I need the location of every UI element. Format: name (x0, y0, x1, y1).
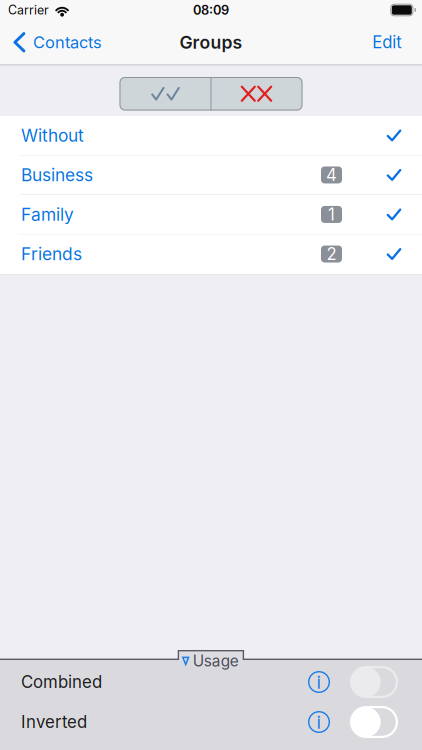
staticText: Contacts (33, 32, 102, 52)
button[interactable]: Contacts (0, 20, 110, 64)
staticText: 4 (326, 165, 337, 185)
staticText: 1 (328, 204, 335, 225)
button[interactable]: Select all (120, 77, 211, 110)
button[interactable]: Info about Inverted (308, 711, 330, 733)
button[interactable]: Usage (0, 650, 422, 750)
button[interactable]: Business (0, 155, 422, 195)
button[interactable]: Combined toggle (350, 666, 398, 698)
staticText: Without (21, 125, 84, 146)
button[interactable]: Without (0, 116, 422, 155)
button[interactable]: Inverted toggle (350, 706, 398, 738)
button[interactable]: Friends (0, 234, 422, 274)
staticText: Edit (372, 32, 401, 52)
staticText: Inverted (21, 712, 87, 732)
staticText: Friends (21, 243, 82, 264)
staticText: 2 (326, 244, 336, 264)
staticText: Business (21, 164, 93, 185)
button[interactable]: Info about Combined (308, 671, 330, 693)
staticText: i (316, 711, 321, 733)
button[interactable]: Deselect all (211, 77, 302, 110)
staticText: 08:09 (193, 2, 229, 18)
staticText: Family (21, 204, 74, 225)
staticText: Combined (21, 672, 102, 692)
staticText: Usage (193, 652, 239, 670)
button[interactable]: Family (0, 195, 422, 234)
button[interactable]: Edit (364, 20, 422, 64)
staticText: i (316, 671, 321, 693)
staticText: Carrier (8, 2, 49, 17)
staticText: Groups (179, 32, 242, 53)
